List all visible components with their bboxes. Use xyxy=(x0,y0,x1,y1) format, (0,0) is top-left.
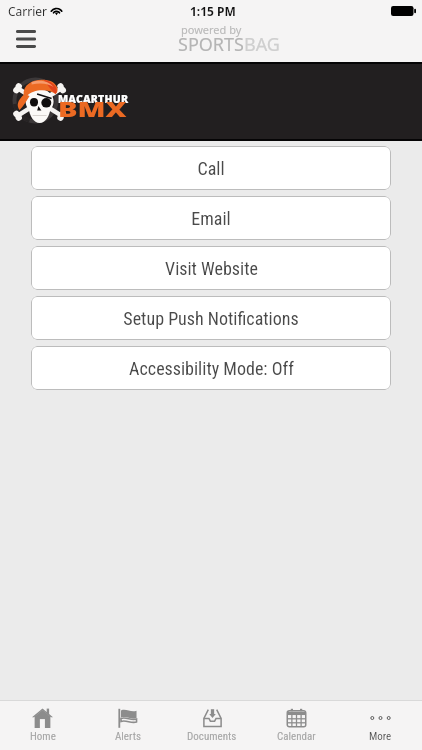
staticText: Call xyxy=(197,158,225,179)
button[interactable]: Setup Push Notifications xyxy=(31,296,391,340)
staticText: Carrier xyxy=(8,3,48,19)
staticText: MACARTHUR xyxy=(58,92,129,106)
button[interactable]: Documents xyxy=(170,701,254,750)
staticText: Accessibility Mode: Off xyxy=(129,358,294,379)
staticText: Setup Push Notifications xyxy=(123,308,299,329)
button[interactable]: Menu xyxy=(8,23,44,55)
staticText: More xyxy=(369,730,392,743)
button[interactable]: Call xyxy=(31,146,391,190)
staticText: Documents xyxy=(187,730,237,743)
button[interactable]: Alerts xyxy=(85,701,170,750)
staticText: BAG xyxy=(244,32,280,57)
staticText: SPORTS xyxy=(178,32,244,57)
staticText: Visit Website xyxy=(165,258,258,279)
staticText: Home xyxy=(30,730,56,743)
button[interactable]: Visit Website xyxy=(31,246,391,290)
staticText: Calendar xyxy=(277,730,316,743)
staticText: BMX xyxy=(58,95,128,124)
staticText: Alerts xyxy=(115,730,141,743)
button[interactable]: Accessibility Mode: Off xyxy=(31,346,391,390)
button[interactable]: Email xyxy=(31,196,391,240)
button[interactable]: Calendar xyxy=(254,701,338,750)
staticText: 1:15 PM xyxy=(190,3,236,19)
staticText: Email xyxy=(191,208,231,229)
staticText: powered by xyxy=(181,22,242,37)
button[interactable]: Home xyxy=(0,701,85,750)
button[interactable]: More xyxy=(338,701,422,750)
